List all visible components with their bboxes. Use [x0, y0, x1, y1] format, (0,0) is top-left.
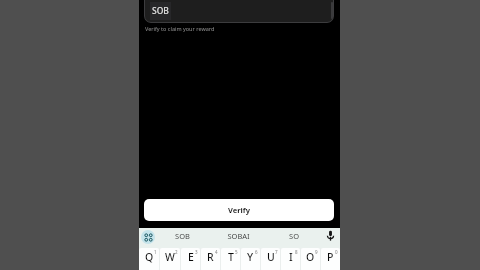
- staticText: Verify to claim your reward: [145, 25, 215, 32]
- button[interactable]: R: [201, 248, 220, 270]
- button[interactable]: O: [301, 248, 320, 270]
- button[interactable]: Switch keyboard: [141, 230, 155, 244]
- staticText: P: [327, 250, 334, 264]
- staticText: 4: [215, 249, 218, 255]
- button[interactable]: T: [221, 248, 240, 270]
- staticText: 8: [295, 249, 298, 255]
- staticText: Y: [247, 250, 254, 264]
- button[interactable]: P: [321, 248, 340, 270]
- staticText: I: [289, 250, 293, 264]
- staticText: 9: [315, 249, 318, 255]
- staticText: 5: [235, 249, 238, 255]
- staticText: T: [228, 250, 234, 264]
- staticText: E: [188, 250, 194, 264]
- staticText: O: [306, 250, 315, 264]
- button[interactable]: Voice input: [324, 229, 337, 242]
- button[interactable]: E: [181, 248, 200, 270]
- staticText: 7: [275, 249, 278, 255]
- staticText: SOBAI: [227, 231, 250, 241]
- staticText: W: [165, 250, 175, 264]
- button[interactable]: SOB: [162, 228, 202, 243]
- button[interactable]: I: [281, 248, 300, 270]
- staticText: 0: [335, 249, 338, 255]
- button[interactable]: SOBAI: [218, 228, 258, 243]
- staticText: 6: [255, 249, 258, 255]
- button[interactable]: Q: [139, 248, 159, 270]
- staticText: SOB: [152, 5, 169, 17]
- button[interactable]: U: [261, 248, 280, 270]
- staticText: 3: [195, 249, 198, 255]
- staticText: Q: [145, 250, 154, 264]
- button[interactable]: SOB: [144, 0, 334, 23]
- staticText: R: [207, 250, 214, 264]
- button[interactable]: W: [160, 248, 180, 270]
- button[interactable]: Verify: [144, 199, 334, 221]
- staticText: U: [267, 250, 275, 264]
- staticText: SOB: [175, 231, 190, 241]
- staticText: 1: [154, 249, 157, 255]
- button[interactable]: Y: [241, 248, 260, 270]
- staticText: Verify: [228, 205, 250, 215]
- staticText: SO: [289, 231, 299, 241]
- staticText: 2: [175, 249, 178, 255]
- button[interactable]: SO: [274, 228, 314, 243]
